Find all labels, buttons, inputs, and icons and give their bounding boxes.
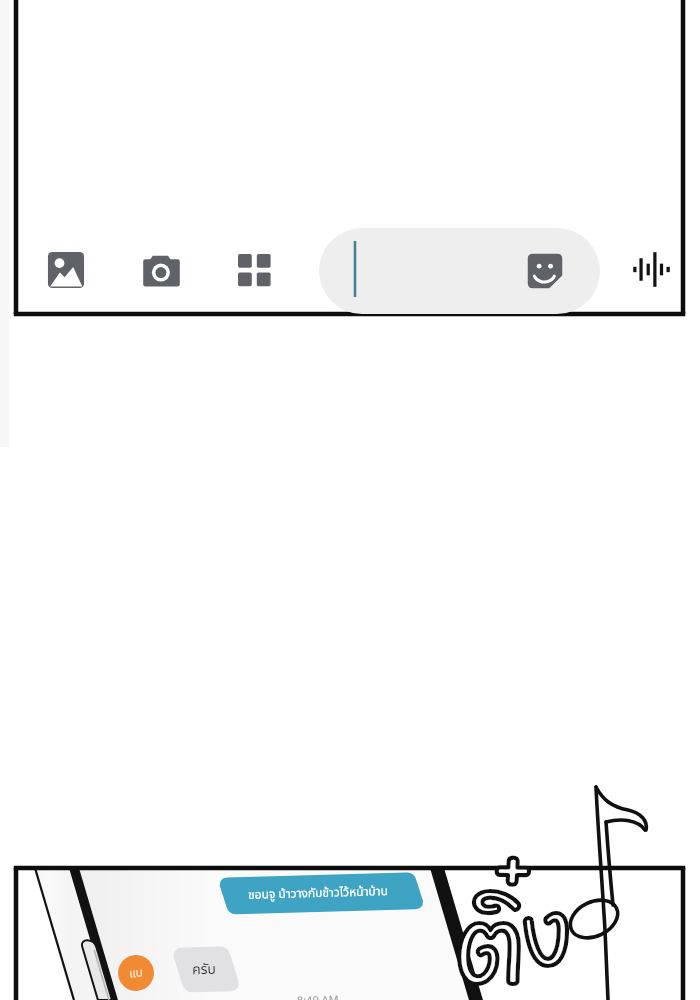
staticText: ติ๋ bbox=[454, 844, 527, 1000]
button[interactable]: ครับ bbox=[175, 946, 232, 993]
button[interactable]: ชอนจู น้าวางกับข้าวไว้หน้าบ้าน bbox=[221, 871, 414, 914]
button[interactable]: Gallery bbox=[44, 248, 88, 292]
staticText: 8:49 AM bbox=[297, 991, 339, 1000]
button[interactable]: Avatar bbox=[116, 953, 156, 993]
button[interactable]: Sticker bbox=[522, 248, 568, 294]
staticText: ง bbox=[521, 845, 572, 998]
staticText: ติ๋ bbox=[454, 844, 527, 1000]
button[interactable]: Apps bbox=[238, 254, 280, 296]
staticText: ง bbox=[521, 845, 572, 998]
button[interactable]: Sticker bbox=[319, 228, 600, 314]
staticText: ครับ bbox=[192, 959, 216, 980]
button[interactable]: Voice message bbox=[629, 247, 674, 292]
staticText: แบ bbox=[128, 963, 144, 983]
button[interactable]: Camera bbox=[142, 243, 186, 287]
staticText: ชอนจู น้าวางกับข้าวไว้หน้าบ้าน bbox=[248, 882, 388, 904]
